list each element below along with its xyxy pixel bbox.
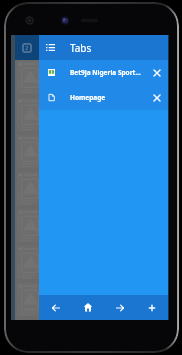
button[interactable]: Homepage	[39, 85, 168, 110]
staticText: Bet9ja Nigeria Sport...	[70, 68, 150, 77]
staticText: Homepage	[70, 93, 150, 102]
button[interactable]: Bet9ja Nigeria Sport...	[39, 60, 168, 85]
staticText: 2	[25, 44, 29, 52]
button[interactable]: Back	[39, 295, 72, 320]
button[interactable]: Forward	[104, 295, 136, 320]
button[interactable]: New tab	[136, 295, 168, 320]
other: Tab list	[46, 44, 55, 51]
button[interactable]: Tab list	[39, 35, 168, 60]
button[interactable]: Close tab	[150, 66, 163, 79]
button[interactable]: Close tab	[150, 91, 163, 104]
button[interactable]: Home	[72, 295, 104, 320]
staticText: Tabs	[70, 41, 92, 55]
